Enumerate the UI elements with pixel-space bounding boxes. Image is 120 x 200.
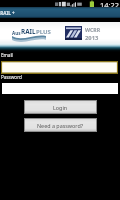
staticText: Email [1,52,13,58]
staticText: Aus [12,30,21,36]
button[interactable]: Need a password? [25,119,96,131]
staticText: 2013 [85,34,99,42]
staticText: Password [1,74,22,80]
staticText: RAIL [21,27,36,36]
staticText: Login [53,104,68,111]
staticText: sRAIL + [0,10,15,16]
button[interactable] [1,61,118,74]
staticText: Need a password? [37,122,84,129]
staticText: WCRR [85,26,101,33]
staticText: 14:22 [100,0,119,7]
staticText: PLUS [36,28,51,36]
button[interactable]: Login [25,101,96,113]
